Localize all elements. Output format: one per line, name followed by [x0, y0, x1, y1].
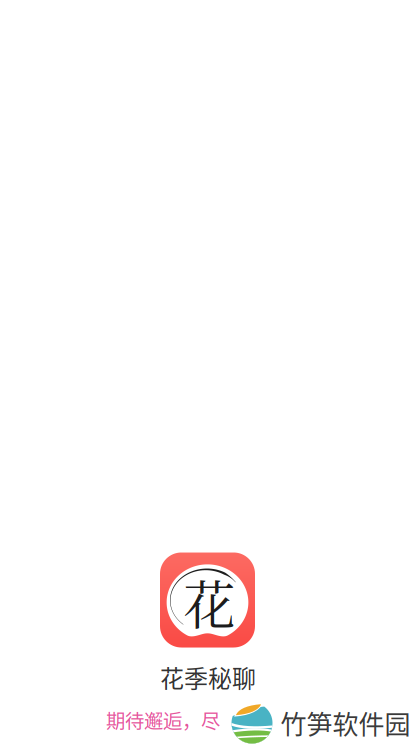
staticText: 期待邂逅，尽 — [106, 706, 220, 734]
button[interactable]: 竹笋软件园 — [231, 700, 410, 745]
staticText: 花季秘聊 — [160, 660, 256, 694]
staticText: 花 — [184, 565, 236, 639]
staticText: 竹笋软件园 — [280, 704, 410, 742]
